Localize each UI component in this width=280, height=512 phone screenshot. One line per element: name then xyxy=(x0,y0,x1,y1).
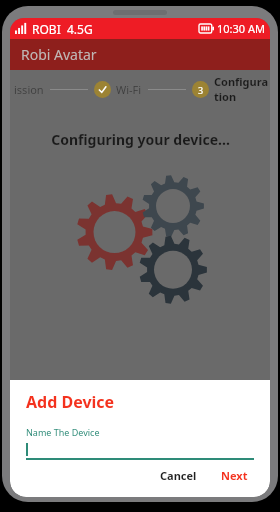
staticText: 3 xyxy=(198,84,204,96)
button[interactable]: Wi-Fi step completed xyxy=(94,81,111,98)
staticText: Next xyxy=(221,468,248,483)
staticText: Configuring your device... xyxy=(51,130,230,149)
staticText: Configuration xyxy=(214,74,270,104)
button[interactable]: 3 xyxy=(192,81,209,98)
staticText: ission xyxy=(14,82,44,97)
button[interactable]: Next xyxy=(215,464,254,487)
staticText: 10:30 AM xyxy=(217,21,265,36)
staticText: Wi-Fi xyxy=(116,82,142,97)
staticText: Robi Avatar xyxy=(21,45,97,64)
staticText: Add Device xyxy=(26,391,115,413)
staticText: Cancel xyxy=(160,468,197,483)
button[interactable]: Cancel xyxy=(154,464,203,487)
staticText: ROBI 4.5G xyxy=(32,21,93,37)
button[interactable]: Device name input xyxy=(26,442,254,460)
staticText: Name The Device xyxy=(26,426,100,438)
